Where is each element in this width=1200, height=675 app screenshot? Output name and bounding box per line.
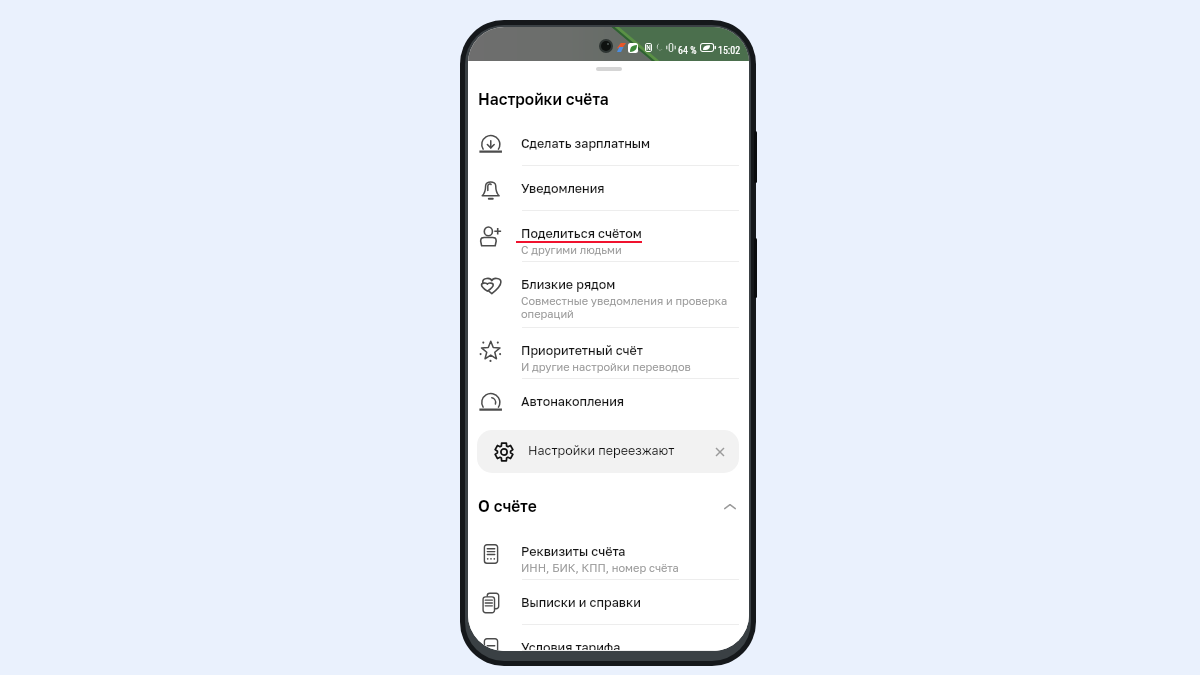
button[interactable]: Близкие рядом xyxy=(468,262,749,328)
button[interactable]: Уведомления xyxy=(468,166,749,211)
staticText: 15:02 xyxy=(718,45,741,57)
staticText: ИНН, БИК, КПП, номер счёта xyxy=(521,561,679,574)
staticText: Настройки счёта xyxy=(478,90,609,109)
button[interactable]: Сделать зарплатным xyxy=(468,121,749,166)
staticText: Реквизиты счёта xyxy=(521,544,626,559)
staticText: Настройки переезжают xyxy=(528,443,675,458)
staticText: Приоритетный счёт xyxy=(521,343,643,358)
button[interactable]: Настройки переезжают xyxy=(477,430,739,473)
staticText: С другими людьми xyxy=(521,243,622,256)
staticText: Близкие рядом xyxy=(521,277,616,292)
button[interactable]: Приоритетный счёт xyxy=(468,328,749,379)
staticText: Сделать зарплатным xyxy=(521,136,651,151)
button[interactable]: Поделиться счётом xyxy=(468,211,749,262)
button[interactable]: Реквизиты счёта xyxy=(468,529,749,580)
staticText: Условия тарифа xyxy=(521,640,621,651)
staticText: Совместные уведомления и проверка операц… xyxy=(521,294,740,321)
button[interactable]: Выписки и справки xyxy=(468,580,749,625)
staticText: И другие настройки переводов xyxy=(521,360,691,373)
button[interactable]: О счёте xyxy=(478,497,737,516)
staticText: Автонакопления xyxy=(521,394,624,409)
button[interactable]: Закрыть xyxy=(709,441,731,463)
staticText: Поделиться счётом xyxy=(521,226,642,241)
staticText: Уведомления xyxy=(521,181,605,196)
staticText: 64 % xyxy=(678,45,697,57)
staticText: О счёте xyxy=(478,497,537,516)
button[interactable]: Автонакопления xyxy=(468,379,749,424)
button[interactable]: Условия тарифа xyxy=(468,625,749,651)
staticText: Выписки и справки xyxy=(521,595,641,610)
